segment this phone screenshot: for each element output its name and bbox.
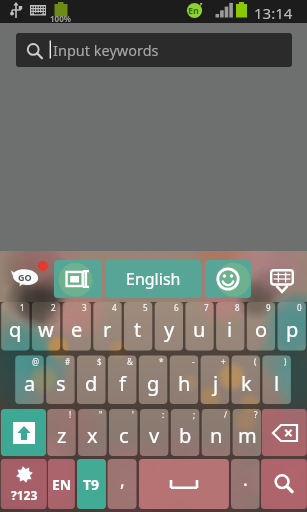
staticText: j: [213, 370, 219, 397]
staticText: 4: [112, 302, 117, 313]
staticText: &: [127, 356, 133, 367]
button[interactable]: 5: [124, 302, 152, 351]
button[interactable]: +: [201, 356, 230, 405]
staticText: EN: [52, 475, 72, 494]
button[interactable]: English: [105, 260, 201, 298]
button[interactable]: 6: [155, 302, 183, 351]
staticText: (: [254, 356, 257, 367]
button[interactable]: Space: [139, 459, 229, 509]
button[interactable]: ;: [171, 409, 200, 456]
staticText: ;: [193, 409, 196, 420]
staticText: 13:14: [254, 3, 293, 23]
button[interactable]: ': [109, 409, 138, 456]
staticText: 8: [235, 302, 240, 313]
button[interactable]: 4: [93, 302, 121, 351]
button[interactable]: 9: [247, 302, 275, 351]
staticText: a: [24, 370, 36, 397]
button[interactable]: @: [15, 356, 44, 405]
button[interactable]: 1: [1, 302, 29, 351]
button[interactable]: Emoji: [205, 260, 251, 298]
button[interactable]: &: [108, 356, 137, 405]
staticText: *: [159, 356, 164, 367]
staticText: ?: [254, 409, 258, 420]
button[interactable]: -: [170, 356, 199, 405]
button[interactable]: Theme: [54, 260, 102, 298]
button[interactable]: $: [77, 356, 106, 405]
staticText: m: [238, 422, 257, 449]
staticText: +: [221, 356, 226, 367]
button[interactable]: ,: [108, 459, 137, 509]
staticText: GO: [18, 271, 32, 283]
button[interactable]: GO Keyboard menu: [10, 267, 42, 287]
staticText: 100%: [50, 13, 71, 24]
staticText: 7: [204, 302, 209, 313]
button[interactable]: 2: [32, 302, 60, 351]
button[interactable]: EN: [48, 459, 75, 509]
staticText: English: [126, 268, 181, 290]
staticText: f: [119, 370, 126, 397]
staticText: $: [97, 356, 102, 367]
staticText: .: [243, 467, 248, 492]
button[interactable]: 8: [216, 302, 244, 351]
button[interactable]: ": [78, 409, 107, 456]
button[interactable]: :: [140, 409, 169, 456]
staticText: o: [255, 316, 268, 343]
staticText: y: [164, 316, 175, 343]
staticText: u: [193, 316, 206, 343]
staticText: ?123: [11, 487, 38, 503]
staticText: 2: [51, 302, 56, 313]
button[interactable]: !: [47, 409, 76, 456]
button[interactable]: Backspace: [262, 409, 307, 456]
button[interactable]: .: [231, 459, 260, 509]
button[interactable]: Symbols and settings: [1, 459, 47, 509]
staticText: t: [134, 316, 142, 343]
button[interactable]: Input keywords: [16, 33, 292, 67]
staticText: 5: [143, 302, 148, 313]
staticText: ': [132, 409, 134, 420]
staticText: 3: [82, 302, 87, 313]
staticText: w: [38, 316, 54, 343]
staticText: g: [147, 370, 160, 397]
staticText: :: [162, 409, 165, 420]
staticText: h: [178, 370, 191, 397]
staticText: b: [179, 422, 192, 449]
staticText: En: [188, 4, 199, 16]
button[interactable]: 7: [185, 302, 213, 351]
staticText: /: [224, 409, 227, 420]
button[interactable]: Shift: [1, 409, 46, 456]
staticText: 1: [20, 302, 25, 313]
staticText: q: [9, 316, 22, 343]
staticText: !: [69, 409, 72, 420]
staticText: 6: [174, 302, 179, 313]
staticText: T9: [83, 475, 100, 494]
button[interactable]: ?: [233, 409, 262, 456]
staticText: -: [192, 356, 195, 367]
button[interactable]: Search: [261, 459, 307, 509]
staticText: #: [65, 356, 71, 367]
staticText: @: [32, 356, 40, 367]
button[interactable]: 0: [278, 302, 306, 351]
staticText: p: [286, 316, 299, 343]
staticText: v: [149, 422, 160, 449]
button[interactable]: T9: [77, 459, 106, 509]
staticText: ): [284, 356, 287, 367]
staticText: 9: [266, 302, 271, 313]
button[interactable]: /: [202, 409, 231, 456]
staticText: Input keywords: [53, 40, 159, 60]
staticText: s: [56, 370, 66, 397]
button[interactable]: (: [232, 356, 261, 405]
staticText: ,: [120, 468, 125, 493]
staticText: r: [103, 316, 112, 343]
staticText: e: [71, 316, 83, 343]
staticText: 0: [297, 302, 302, 313]
staticText: z: [57, 422, 67, 449]
button[interactable]: *: [139, 356, 168, 405]
staticText: l: [274, 370, 280, 397]
staticText: d: [85, 370, 98, 397]
button[interactable]: ): [262, 356, 291, 405]
button[interactable]: #: [46, 356, 75, 405]
staticText: ": [99, 409, 103, 420]
button[interactable]: Hide keyboard: [270, 269, 294, 292]
staticText: n: [210, 422, 223, 449]
button[interactable]: 3: [63, 302, 91, 351]
